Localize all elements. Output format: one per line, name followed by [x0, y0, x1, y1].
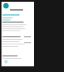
button[interactable]: Logo [3, 3, 9, 9]
